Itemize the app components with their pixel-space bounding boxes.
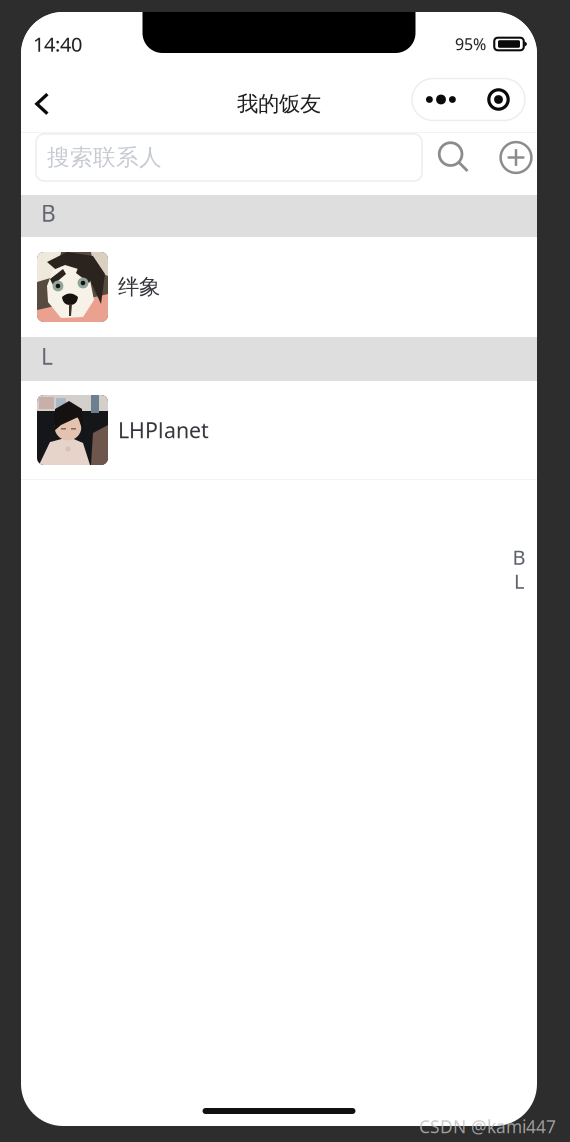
staticText: 95% [455,33,486,55]
staticText: 我的饭友 [237,91,321,117]
staticText: L [41,341,53,371]
button[interactable]: Add contact [499,134,533,181]
button[interactable]: Search [437,134,471,181]
staticText: 搜索联系人 [47,144,162,171]
staticText: B [41,198,56,228]
button[interactable]: Back [21,76,77,132]
button[interactable]: 搜索联系人 [36,134,422,181]
staticText: 14:40 [33,31,82,57]
staticText: 绊象 [118,274,160,300]
button[interactable]: 绊象 [21,237,537,337]
staticText: CSDN @kami447 [419,1115,556,1138]
button[interactable]: Menu and close mini program [412,78,525,120]
button[interactable]: LHPlanet [21,381,537,479]
staticText: LHPlanet [118,416,209,444]
staticText: B [512,544,525,570]
staticText: L [514,568,524,594]
button[interactable]: Alphabet index [507,545,531,593]
